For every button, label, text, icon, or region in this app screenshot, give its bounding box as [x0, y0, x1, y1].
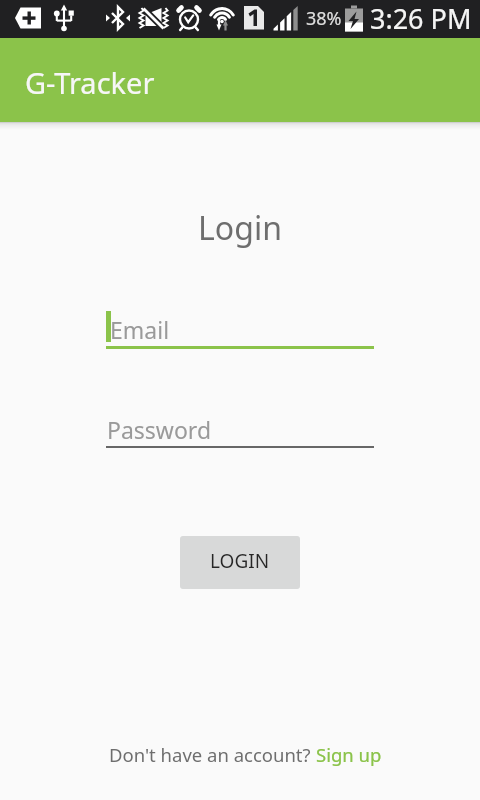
staticText: Don't have an account? — [109, 742, 316, 767]
staticText: 38% — [306, 6, 342, 31]
button[interactable]: Password — [106, 412, 374, 448]
staticText: LOGIN — [210, 548, 270, 574]
staticText: 3:26 PM — [370, 0, 472, 37]
button[interactable]: LOGIN — [180, 536, 300, 589]
staticText: Sign up — [316, 742, 382, 767]
staticText: G-Tracker — [25, 63, 155, 102]
button[interactable]: Email — [106, 312, 374, 349]
staticText: Email — [110, 314, 170, 345]
button[interactable]: Sign up — [316, 742, 382, 767]
staticText: Login — [0, 206, 480, 250]
staticText: Password — [107, 414, 212, 445]
